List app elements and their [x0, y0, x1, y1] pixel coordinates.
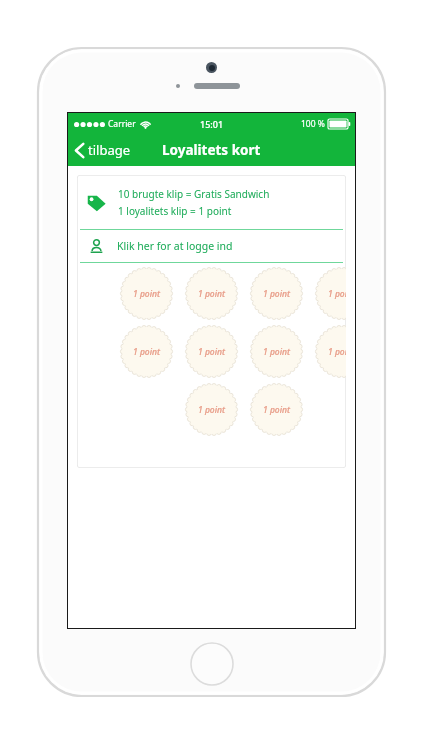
staticText: Klik her for at logge ind — [117, 239, 233, 253]
staticText: 1 point — [263, 346, 290, 358]
staticText: 10 brugte klip = Gratis Sandwich — [118, 187, 270, 201]
button[interactable]: 1 point — [250, 383, 303, 436]
staticText: 1 point — [263, 404, 290, 416]
button[interactable]: 1 point — [315, 325, 346, 378]
staticText: 100 % — [301, 118, 325, 130]
staticText: Loyalitets kort — [162, 141, 261, 159]
staticText: 1 point — [198, 346, 225, 358]
button[interactable]: 1 point — [250, 325, 303, 378]
staticText: 1 point — [133, 288, 160, 300]
other: Log in — [90, 239, 103, 254]
staticText: tilbage — [88, 141, 131, 159]
staticText: 1 loyalitets klip = 1 point — [118, 204, 232, 218]
button[interactable]: 1 point — [315, 267, 346, 320]
button[interactable]: 1 point — [185, 383, 238, 436]
staticText: 1 point — [328, 288, 346, 300]
staticText: 1 point — [328, 346, 346, 358]
button[interactable]: 1 point — [250, 267, 303, 320]
other: Offer tag — [87, 193, 106, 212]
button[interactable]: 1 point — [185, 267, 238, 320]
button[interactable]: 1 point — [120, 325, 173, 378]
staticText: 1 point — [263, 288, 290, 300]
staticText: 15:01 — [200, 118, 224, 130]
button[interactable]: tilbage — [68, 137, 139, 163]
staticText: 1 point — [198, 288, 225, 300]
button[interactable]: Log in — [77, 230, 346, 262]
staticText: 1 point — [133, 346, 160, 358]
staticText: Carrier — [108, 118, 136, 130]
button[interactable]: Offer tag — [77, 175, 346, 229]
staticText: 1 point — [198, 404, 225, 416]
button[interactable]: 1 point — [185, 325, 238, 378]
button[interactable]: 1 point — [120, 267, 173, 320]
